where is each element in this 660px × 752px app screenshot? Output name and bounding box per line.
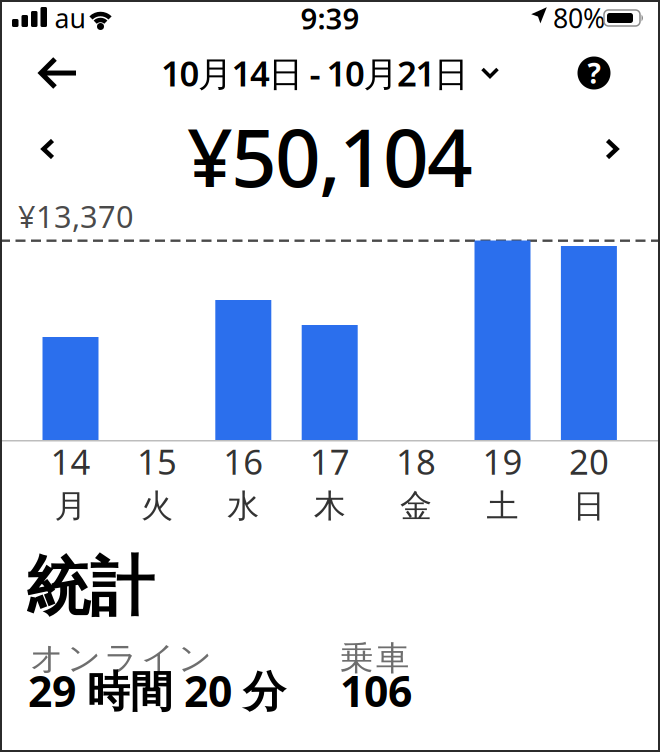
- staticText: 木: [314, 486, 346, 526]
- staticText: 乗車: [340, 638, 409, 679]
- staticText: 18: [396, 438, 436, 484]
- staticText: ¥50,104: [187, 103, 473, 209]
- staticText: 14: [50, 438, 90, 484]
- staticText: 80%: [553, 0, 605, 36]
- staticText: 統計: [26, 548, 154, 627]
- button[interactable]: Previous week: [18, 106, 78, 192]
- staticText: ?: [587, 54, 600, 92]
- staticText: 9:39: [300, 0, 359, 37]
- staticText: ¥13,370: [18, 196, 134, 236]
- staticText: 月: [54, 486, 86, 526]
- staticText: 日: [573, 486, 605, 526]
- staticText: 29 時間 20 分: [28, 662, 286, 719]
- staticText: 106: [340, 662, 412, 719]
- staticText: オンライン: [30, 638, 212, 679]
- staticText: 20: [569, 438, 609, 484]
- button[interactable]: Back: [0, 38, 70, 104]
- staticText: 17: [310, 438, 350, 484]
- button[interactable]: Help: [561, 40, 627, 106]
- staticText: 15: [137, 438, 177, 484]
- staticText: 10月14日 - 10月21日: [161, 50, 469, 96]
- button[interactable]: Next week: [582, 106, 642, 192]
- staticText: 16: [223, 438, 263, 484]
- staticText: 金: [400, 486, 432, 526]
- staticText: au: [54, 0, 85, 36]
- staticText: 19: [482, 438, 522, 484]
- staticText: 水: [227, 486, 259, 526]
- staticText: 火: [141, 486, 173, 526]
- button[interactable]: 10月14日 - 10月21日: [161, 38, 499, 104]
- staticText: 土: [486, 486, 518, 526]
